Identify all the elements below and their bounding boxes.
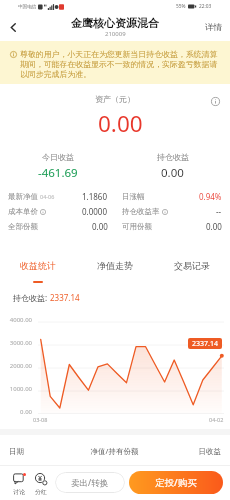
staticText: 210009: [105, 30, 126, 38]
staticText: 持仓收益率: [122, 207, 160, 216]
staticText: 0.00: [92, 221, 108, 232]
staticText: 分红: [35, 488, 47, 496]
staticText: 0.00: [98, 108, 143, 139]
staticText: 日收益: [160, 447, 221, 456]
staticText: 成本单价: [8, 207, 38, 216]
staticText: 1.1860: [82, 191, 108, 202]
staticText: 03-08: [33, 416, 48, 423]
staticText: 22:03: [199, 3, 212, 10]
button[interactable]: 卖出/转换: [55, 472, 125, 493]
staticText: 04-06: [40, 193, 55, 200]
staticText: 可用份额: [122, 222, 152, 231]
staticText: 交易记录: [174, 260, 210, 271]
staticText: 3000.00: [0, 339, 32, 347]
staticText: 最新净值: [8, 192, 38, 201]
staticText: 4000.00: [0, 316, 32, 324]
button[interactable]: Info: [208, 94, 222, 108]
staticText: 1000.00: [0, 385, 32, 393]
staticText: 0.94%: [199, 191, 222, 202]
button[interactable]: Back: [0, 14, 26, 40]
staticText: 持仓收益:: [13, 292, 50, 303]
staticText: 详情: [205, 22, 222, 33]
staticText: 定投/购买: [155, 476, 197, 489]
staticText: -461.69: [38, 165, 78, 181]
staticText: 今日收益: [42, 152, 74, 162]
staticText: 55%: [176, 3, 186, 10]
staticText: 资产（元）: [95, 94, 135, 104]
staticText: 卖出/转换: [71, 477, 109, 489]
staticText: 以同步完成后为准。: [20, 69, 92, 79]
staticText: 2337.14: [50, 292, 80, 303]
staticText: 0.0000: [82, 206, 108, 217]
staticText: 持仓收益: [157, 152, 189, 162]
staticText: 04-02: [209, 416, 224, 423]
staticText: 日期: [9, 447, 69, 456]
staticText: 金鹰核心资源混合: [71, 16, 159, 30]
button[interactable]: 净值走势: [76, 258, 153, 283]
staticText: 期间，可能存在收益显示不一致的情况，实际盈亏数据请: [20, 59, 218, 69]
staticText: 0.00: [206, 221, 222, 232]
staticText: 0.00: [161, 165, 184, 181]
button[interactable]: 详情: [205, 13, 222, 41]
button[interactable]: 定投/购买: [129, 471, 223, 494]
staticText: 讨论: [13, 488, 25, 496]
staticText: --: [216, 206, 222, 217]
staticText: 0.00: [0, 408, 32, 416]
staticText: 尊敬的用户，小天正在为您更新当日持仓收益，系统清算: [20, 49, 218, 59]
button[interactable]: 交易记录: [153, 258, 230, 283]
staticText: 净值/持有份额: [69, 446, 160, 456]
button[interactable]: 讨论: [8, 465, 30, 496]
staticText: 收益统计: [20, 260, 56, 271]
staticText: 净值走势: [97, 260, 133, 271]
staticText: 2337.14: [192, 339, 218, 349]
staticText: 全部份额: [8, 222, 38, 231]
button[interactable]: 收益统计: [0, 258, 76, 285]
button[interactable]: 分红: [30, 465, 52, 496]
staticText: 日涨幅: [122, 192, 145, 201]
staticText: 2000.00: [0, 362, 32, 370]
staticText: 中国电信: [18, 4, 37, 10]
